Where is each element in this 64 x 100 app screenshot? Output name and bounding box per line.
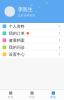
button[interactable]: 我的 bbox=[43, 90, 64, 100]
staticText: 我的问诊 bbox=[9, 45, 25, 50]
staticText: 首页 bbox=[8, 95, 14, 99]
button[interactable]: 个人资料 bbox=[0, 23, 64, 30]
staticText: 设置中心 bbox=[9, 52, 25, 57]
staticText: 健康档案 bbox=[9, 38, 25, 43]
button[interactable]: 设置中心 bbox=[0, 51, 64, 58]
button[interactable]: 我的订单 bbox=[0, 30, 64, 37]
staticText: 李医生 bbox=[18, 6, 33, 13]
staticText: 问诊 bbox=[29, 95, 35, 99]
button[interactable]: 首页 bbox=[0, 90, 21, 100]
staticText: 个人资料 bbox=[9, 24, 25, 29]
staticText: 我的 bbox=[50, 95, 56, 99]
button[interactable]: 我的问诊 bbox=[0, 44, 64, 51]
staticText: 北京协和医院 bbox=[18, 14, 36, 17]
button[interactable]: 问诊 bbox=[21, 90, 43, 100]
button[interactable]: 健康档案 bbox=[0, 37, 64, 44]
staticText: 我的订单 bbox=[9, 31, 25, 36]
